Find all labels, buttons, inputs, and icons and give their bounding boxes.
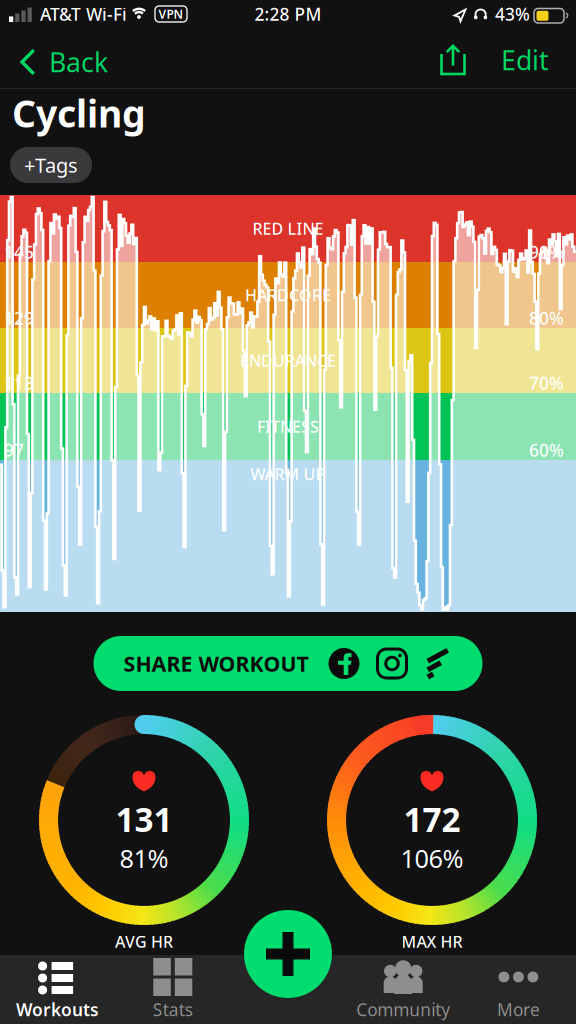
staticText: MAX HR — [401, 931, 462, 952]
staticText: Stats — [153, 998, 193, 1021]
staticText: 90% — [529, 240, 564, 263]
staticText: 81% — [119, 841, 168, 875]
staticText: 2:28 PM — [254, 2, 321, 25]
staticText: AT&T Wi-Fi — [40, 2, 127, 25]
button[interactable]: Edit — [490, 38, 560, 82]
staticText: 172 — [403, 797, 460, 841]
staticText: 97 — [4, 438, 24, 461]
staticText: Back — [49, 44, 108, 80]
staticText: 145 — [4, 240, 34, 263]
staticText: RED LINE — [252, 218, 323, 239]
staticText: Cycling — [12, 88, 146, 138]
button[interactable]: More — [461, 955, 576, 1024]
staticText: Workouts — [16, 998, 99, 1021]
staticText: 131 — [115, 797, 172, 841]
button[interactable]: Add workout — [244, 910, 332, 998]
staticText: WARM UP — [250, 463, 325, 485]
staticText: ENDURANCE — [240, 350, 336, 371]
staticText: 70% — [529, 371, 564, 394]
button[interactable]: Share — [431, 38, 475, 82]
staticText: HARDCORE — [245, 284, 331, 305]
staticText: FITNESS — [257, 416, 319, 437]
staticText: +Tags — [24, 152, 78, 178]
staticText: 106% — [400, 841, 463, 875]
staticText: Edit — [501, 42, 549, 78]
staticText: 43% — [495, 2, 530, 25]
staticText: AVG HR — [115, 931, 173, 952]
staticText: 113 — [4, 371, 34, 394]
button[interactable]: Back — [15, 40, 155, 84]
staticText: SHARE WORKOUT — [123, 649, 308, 678]
staticText: Community — [356, 998, 450, 1021]
button[interactable]: SHARE WORKOUT — [93, 636, 482, 691]
button[interactable]: Community — [346, 955, 461, 1024]
staticText: More — [497, 998, 540, 1021]
button[interactable]: Workouts — [0, 955, 115, 1024]
staticText: VPN — [158, 6, 183, 22]
staticText: 129 — [4, 306, 34, 329]
staticText: 60% — [529, 438, 564, 461]
staticText: 80% — [529, 306, 564, 329]
button[interactable]: +Tags — [10, 147, 92, 183]
button[interactable]: Stats — [115, 955, 230, 1024]
